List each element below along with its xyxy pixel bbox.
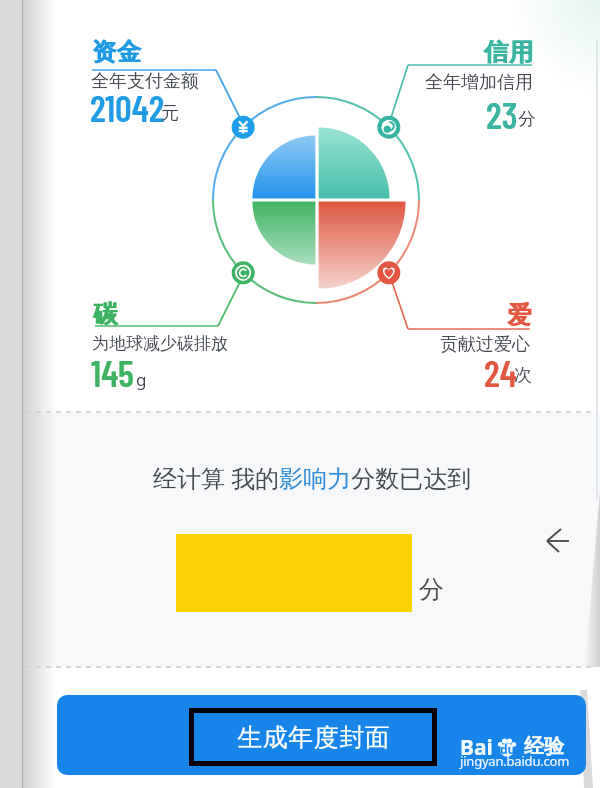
- staticText: 元: [161, 102, 179, 125]
- staticText: jingyan.baidu.com: [460, 752, 570, 770]
- staticText: Bai: [460, 733, 493, 762]
- staticText: 信用: [484, 37, 534, 67]
- staticText: 经验: [524, 734, 564, 759]
- staticText: 碳: [93, 299, 117, 329]
- staticText: g: [136, 368, 147, 391]
- staticText: 资金: [91, 37, 141, 67]
- staticText: 分: [518, 108, 536, 131]
- staticText: 为地球减少碳排放: [92, 333, 228, 354]
- staticText: 次: [514, 364, 532, 387]
- staticText: 资金: [92, 37, 142, 67]
- staticText: 爱: [508, 300, 532, 330]
- staticText: du: [500, 741, 516, 757]
- staticText: 碳: [94, 299, 118, 329]
- staticText: 经计算 我的影响力分数已达到: [153, 461, 472, 494]
- staticText: 分: [419, 574, 444, 605]
- staticText: 145: [91, 350, 134, 394]
- staticText: 爱: [507, 300, 531, 330]
- staticText: 全年增加信用: [425, 71, 533, 94]
- staticText: 信用: [483, 37, 533, 67]
- staticText: 贡献过爱心: [440, 333, 530, 356]
- button[interactable]: [57, 695, 586, 775]
- staticText: 21042: [90, 85, 165, 129]
- staticText: 全年支付金额: [91, 70, 199, 93]
- staticText: 生成年度封面: [237, 722, 390, 753]
- staticText: 23: [486, 92, 518, 136]
- button[interactable]: 生成年度封面: [189, 708, 437, 766]
- staticText: 24: [484, 350, 517, 394]
